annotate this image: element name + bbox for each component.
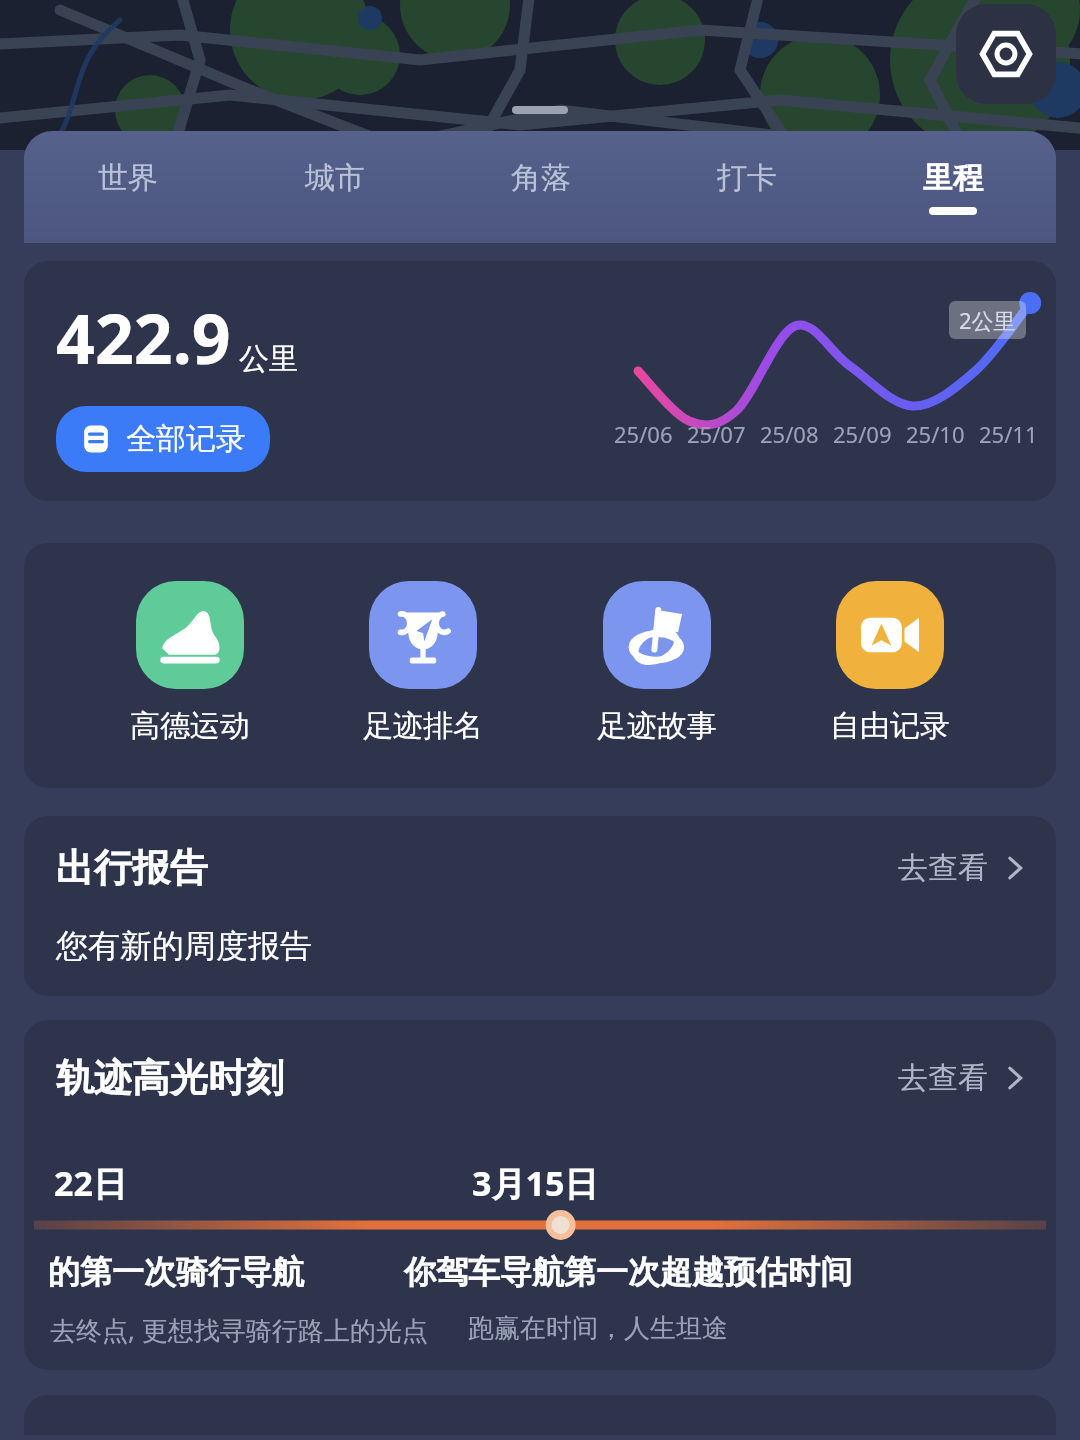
staticText: 公里	[239, 340, 299, 378]
staticText: 足迹故事	[597, 707, 717, 745]
staticText: 的第一次骑行导航	[48, 1252, 304, 1292]
staticText: 25/11	[979, 419, 1038, 449]
button[interactable]: 城市	[231, 131, 438, 243]
staticText: 城市	[305, 159, 365, 197]
staticText: 422.9	[56, 291, 231, 384]
button[interactable]: 轨迹高光时刻	[24, 1020, 1056, 1370]
button[interactable]: 自由记录	[822, 581, 958, 745]
staticText: 轨迹高光时刻	[56, 1054, 284, 1102]
staticText: 去查看	[898, 1059, 988, 1097]
staticText: 25/09	[833, 419, 892, 449]
staticText: 自由记录	[830, 707, 950, 745]
button[interactable]: 422.9	[24, 261, 1056, 501]
staticText: 你驾车导航第一次超越预估时间	[404, 1252, 852, 1292]
button[interactable]: 出行报告	[24, 816, 1056, 996]
button[interactable]: 角落	[438, 131, 644, 243]
staticText: 25/07	[687, 419, 746, 449]
staticText: 22日	[54, 1160, 127, 1206]
staticText: 出行报告	[56, 844, 208, 892]
staticText: 2公里	[959, 305, 1016, 335]
staticText: 您有新的周度报告	[56, 926, 312, 966]
staticText: 世界	[98, 159, 158, 197]
staticText: 3月15日	[472, 1160, 599, 1206]
button[interactable]: 打卡	[644, 131, 850, 243]
button[interactable]: Settings	[956, 4, 1056, 104]
button[interactable]: 去查看	[898, 1059, 1028, 1097]
button[interactable]: 全部记录	[56, 406, 270, 472]
staticText: 去查看	[898, 849, 988, 887]
staticText: 25/08	[760, 419, 819, 449]
button[interactable]: 高德运动	[122, 581, 258, 745]
staticText: 25/10	[906, 419, 965, 449]
staticText: 足迹排名	[363, 707, 483, 745]
button[interactable]: 足迹排名	[355, 581, 491, 745]
button[interactable]: 世界	[24, 131, 231, 243]
staticText: 跑赢在时间，人生坦途	[468, 1312, 728, 1345]
button[interactable]: 足迹故事	[589, 581, 725, 745]
staticText: 角落	[511, 159, 571, 197]
button[interactable]: 里程	[850, 131, 1056, 243]
button[interactable]: 去查看	[898, 849, 1028, 887]
staticText: 去终点, 更想找寻骑行路上的光点	[50, 1312, 428, 1348]
staticText: 里程	[923, 159, 983, 197]
staticText: 25/06	[614, 419, 673, 449]
staticText: 高德运动	[130, 707, 250, 745]
staticText: 打卡	[717, 159, 777, 197]
staticText: 全部记录	[126, 420, 246, 458]
